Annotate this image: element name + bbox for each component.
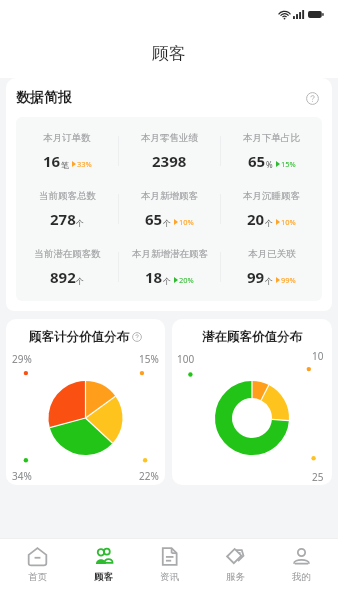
staticText: 当前潜在顾客数 bbox=[34, 248, 101, 260]
staticText: 本月沉睡顾客 bbox=[243, 190, 300, 202]
staticText: 首页 bbox=[28, 571, 47, 583]
staticText: 服务 bbox=[226, 571, 245, 583]
staticText: 本月下单占比 bbox=[243, 132, 300, 144]
staticText: 资讯 bbox=[160, 571, 179, 583]
staticText: 2398 bbox=[152, 151, 187, 171]
staticText: 本月新增潜在顾客 bbox=[132, 248, 208, 260]
staticText: 20 bbox=[247, 209, 265, 229]
staticText: 99% bbox=[281, 275, 296, 285]
staticText: 10 bbox=[312, 349, 324, 363]
button[interactable]: 本月零售业绩 bbox=[119, 122, 220, 180]
button[interactable]: 潜在顾客价值分布 bbox=[172, 319, 332, 485]
staticText: % bbox=[266, 159, 273, 170]
staticText: 数据简报 bbox=[16, 89, 72, 107]
staticText: 顾客 bbox=[94, 571, 113, 583]
button[interactable]: 当前潜在顾客数 bbox=[16, 238, 118, 296]
staticText: 65 bbox=[145, 209, 163, 229]
staticText: 本月新增顾客 bbox=[141, 190, 198, 202]
staticText: 个 bbox=[265, 276, 273, 286]
staticText: 15% bbox=[281, 159, 296, 169]
button[interactable]: 首页 bbox=[8, 544, 66, 583]
staticText: 278 bbox=[50, 209, 76, 229]
staticText: 18 bbox=[145, 267, 163, 287]
staticText: 本月已关联 bbox=[248, 248, 296, 260]
button[interactable]: 资讯 bbox=[140, 544, 198, 583]
staticText: 100 bbox=[177, 352, 195, 366]
staticText: 33% bbox=[77, 159, 92, 169]
staticText: 个 bbox=[163, 218, 171, 228]
button[interactable]: 顾客 bbox=[74, 544, 132, 583]
button[interactable]: 本月新增潜在顾客 bbox=[119, 238, 220, 296]
button[interactable]: 本月沉睡顾客 bbox=[221, 180, 322, 238]
staticText: 892 bbox=[50, 267, 76, 287]
staticText: 25 bbox=[312, 470, 324, 484]
button[interactable]: 本月新增顾客 bbox=[119, 180, 220, 238]
staticText: 65 bbox=[248, 151, 266, 171]
staticText: 个 bbox=[265, 218, 273, 228]
staticText: 个 bbox=[76, 218, 84, 228]
button[interactable]: 我的 bbox=[272, 544, 330, 583]
staticText: 本月零售业绩 bbox=[141, 132, 198, 144]
staticText: 22% bbox=[139, 469, 159, 483]
button[interactable]: 本月订单数 bbox=[16, 122, 118, 180]
staticText: 29% bbox=[12, 352, 32, 366]
staticText: 个 bbox=[76, 276, 84, 286]
staticText: 我的 bbox=[292, 571, 311, 583]
button[interactable]: 当前顾客总数 bbox=[16, 180, 118, 238]
staticText: 16 bbox=[43, 151, 61, 171]
staticText: 当前顾客总数 bbox=[39, 190, 96, 202]
staticText: 20% bbox=[179, 275, 194, 285]
button[interactable]: 本月下单占比 bbox=[221, 122, 322, 180]
staticText: 10% bbox=[281, 217, 296, 227]
staticText: 10% bbox=[179, 217, 194, 227]
staticText: 个 bbox=[163, 276, 171, 286]
staticText: 顾客 bbox=[152, 43, 186, 64]
staticText: 99 bbox=[247, 267, 265, 287]
staticText: 15% bbox=[139, 352, 159, 366]
button[interactable]: 服务 bbox=[206, 544, 264, 583]
staticText: 34% bbox=[12, 469, 32, 483]
button[interactable]: Help bbox=[302, 88, 322, 108]
button[interactable]: 本月已关联 bbox=[221, 238, 322, 296]
staticText: 本月订单数 bbox=[43, 132, 91, 144]
staticText: 笔 bbox=[61, 160, 69, 170]
button[interactable]: 顾客计分价值分布 bbox=[6, 319, 165, 485]
staticText: 顾客计分价值分布 bbox=[29, 329, 129, 345]
staticText: 潜在顾客价值分布 bbox=[202, 329, 302, 345]
